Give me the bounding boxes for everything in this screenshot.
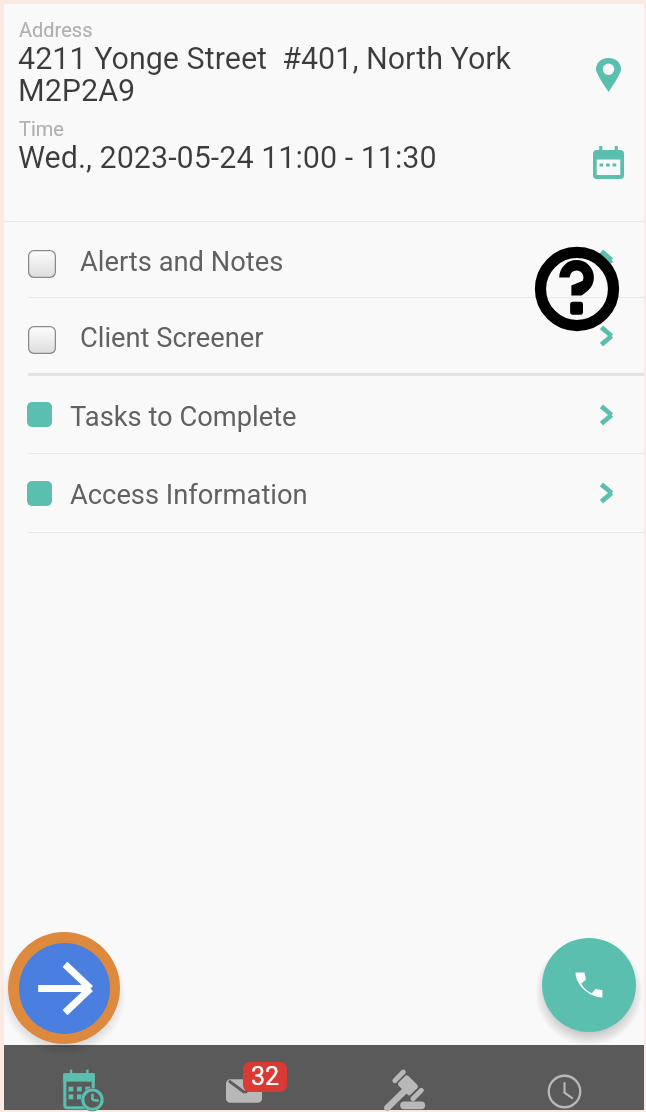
button[interactable]: Schedule [4, 1045, 164, 1110]
staticText: 32 [251, 1062, 280, 1091]
staticText: Address [19, 18, 93, 41]
button[interactable]: Client Screener [4, 298, 644, 373]
staticText: Time [19, 117, 64, 140]
button[interactable]: Messages [164, 1045, 324, 1110]
staticText: Tasks to Complete [70, 401, 297, 433]
button[interactable]: Call [542, 938, 636, 1032]
staticText: Client Screener [80, 322, 264, 354]
button[interactable]: Access Information [4, 454, 644, 532]
staticText: Wed., 2023-05-24 11:00 - 11:30 [18, 140, 437, 176]
button[interactable]: History [484, 1045, 644, 1110]
button[interactable]: Help [533, 245, 621, 333]
button[interactable]: Map location [576, 40, 640, 110]
staticText: Alerts and Notes [80, 246, 284, 278]
staticText: Access Information [70, 479, 308, 511]
button[interactable]: Tasks to Complete [4, 376, 644, 453]
button[interactable]: Calendar [576, 130, 640, 194]
button[interactable]: Alerts and Notes [4, 222, 644, 297]
button[interactable]: Cases [324, 1045, 484, 1110]
staticText: 4211 Yonge Street #401, North York M2P2A… [18, 41, 538, 109]
button[interactable]: Next [8, 932, 120, 1044]
